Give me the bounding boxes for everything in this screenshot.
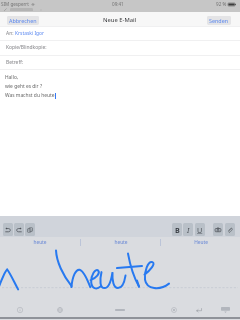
button[interactable]: I: [183, 223, 193, 236]
button[interactable]: An:: [0, 26, 240, 40]
button[interactable]: Dictation: [169, 305, 179, 315]
staticText: Krstaski Igor: [15, 30, 45, 37]
staticText: I: [187, 225, 190, 235]
button[interactable]: Undo: [3, 223, 13, 236]
button[interactable]: heute: [81, 237, 160, 247]
staticText: Heute: [194, 239, 208, 246]
staticText: Was machst du heute: [5, 92, 55, 99]
staticText: An:: [6, 30, 14, 37]
button[interactable]: Senden: [207, 16, 231, 25]
staticText: B: [175, 225, 180, 235]
button[interactable]: U: [195, 223, 205, 236]
staticText: 92 %: [216, 1, 227, 7]
button[interactable]: Redo: [14, 223, 24, 236]
button[interactable]: Language: [55, 305, 65, 315]
button[interactable]: heute: [0, 237, 80, 247]
button[interactable]: Abbrechen: [7, 16, 39, 25]
button[interactable]: Attach: [225, 223, 235, 236]
button[interactable]: Paste: [25, 223, 35, 236]
staticText: Abbrechen: [9, 17, 37, 24]
button[interactable]: Betreff:: [0, 55, 240, 69]
button[interactable]: Kopie/Blindkopie:: [0, 40, 240, 54]
staticText: Hallo,: [5, 74, 19, 81]
staticText: Neue E-Mail: [103, 16, 137, 24]
button[interactable]: Space: [110, 305, 130, 314]
button[interactable]: Return: [194, 305, 204, 315]
staticText: wie geht es dir ?: [5, 83, 43, 90]
button[interactable]: Camera: [213, 223, 223, 236]
staticText: Kopie/Blindkopie:: [6, 44, 47, 51]
staticText: U: [197, 225, 203, 235]
staticText: heute: [33, 239, 47, 246]
staticText: Senden: [209, 17, 229, 24]
staticText: 09:41: [112, 1, 124, 7]
button[interactable]: Info: [15, 305, 25, 315]
staticText: Betreff:: [6, 59, 24, 66]
staticText: SIM gesperrt: [1, 1, 29, 7]
button[interactable]: Hide keyboard: [219, 305, 231, 314]
button[interactable]: B: [172, 223, 182, 236]
button[interactable]: Heute: [161, 237, 240, 247]
staticText: heute: [114, 239, 128, 246]
